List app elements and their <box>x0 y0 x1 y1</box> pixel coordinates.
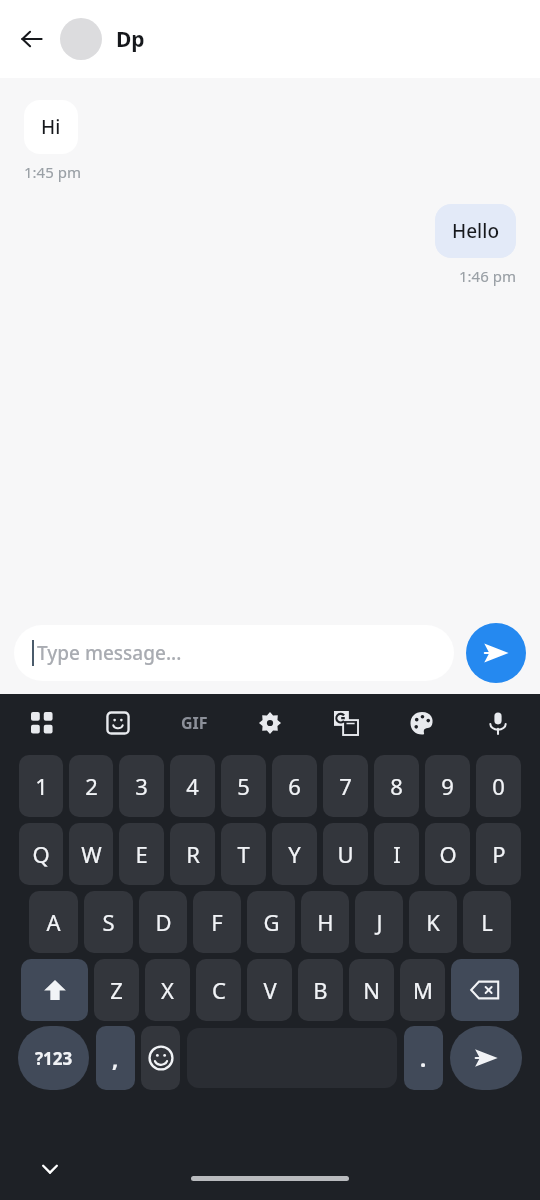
button[interactable]: Profile photo <box>60 18 102 60</box>
button[interactable]: Z <box>94 959 139 1021</box>
button[interactable]: , <box>96 1026 135 1090</box>
button[interactable]: L <box>463 891 511 953</box>
staticText: Z <box>110 975 123 1005</box>
button[interactable]: 4 <box>170 755 215 817</box>
staticText: Q <box>32 839 50 869</box>
button[interactable]: Q <box>19 823 63 885</box>
staticText: Type message... <box>37 640 182 666</box>
button[interactable]: Emoji <box>141 1026 180 1090</box>
staticText: I <box>393 839 401 869</box>
button[interactable]: GIF <box>172 701 216 745</box>
button[interactable]: Back <box>8 15 56 63</box>
staticText: . <box>420 1043 427 1073</box>
button[interactable]: N <box>349 959 394 1021</box>
button[interactable]: Type message... <box>14 625 454 681</box>
button[interactable]: 5 <box>221 755 266 817</box>
staticText: N <box>363 975 380 1005</box>
staticText: Hello <box>452 218 499 244</box>
button[interactable]: Themes <box>400 701 444 745</box>
staticText: Dp <box>116 25 145 54</box>
button[interactable]: Backspace <box>451 959 519 1021</box>
button[interactable]: 9 <box>425 755 470 817</box>
button[interactable]: 6 <box>272 755 317 817</box>
staticText: L <box>481 907 493 937</box>
staticText: 9 <box>441 771 454 801</box>
staticText: 5 <box>237 771 250 801</box>
button[interactable]: Send <box>466 623 526 683</box>
button[interactable]: 7 <box>323 755 368 817</box>
staticText: R <box>186 839 200 869</box>
button[interactable]: P <box>476 823 521 885</box>
button[interactable]: I <box>374 823 419 885</box>
staticText: 4 <box>186 771 199 801</box>
button[interactable]: 3 <box>119 755 164 817</box>
staticText: 0 <box>492 771 505 801</box>
button[interactable]: A <box>29 891 78 953</box>
button[interactable]: Settings <box>248 701 292 745</box>
staticText: 3 <box>135 771 148 801</box>
button[interactable]: Shift <box>21 959 88 1021</box>
button[interactable]: Stickers <box>96 701 140 745</box>
staticText: D <box>155 907 172 937</box>
button[interactable]: 2 <box>69 755 113 817</box>
button[interactable]: F <box>193 891 241 953</box>
button[interactable]: 8 <box>374 755 419 817</box>
button[interactable]: Apps <box>20 701 64 745</box>
staticText: 1:46 pm <box>459 266 516 286</box>
button[interactable]: . <box>404 1026 443 1090</box>
staticText: ?123 <box>35 1047 73 1070</box>
button[interactable]: Y <box>272 823 317 885</box>
staticText: O <box>439 839 457 869</box>
staticText: M <box>413 975 433 1005</box>
staticText: H <box>317 907 334 937</box>
staticText: T <box>237 839 250 869</box>
staticText: X <box>161 975 174 1005</box>
button[interactable]: M <box>400 959 445 1021</box>
button[interactable]: V <box>247 959 292 1021</box>
button[interactable]: Send <box>450 1026 522 1090</box>
button[interactable]: Hi <box>24 100 78 154</box>
button[interactable]: ?123 <box>18 1026 89 1090</box>
button[interactable]: S <box>84 891 133 953</box>
button[interactable]: Translate <box>324 701 368 745</box>
button[interactable]: Dp <box>116 25 145 54</box>
button[interactable]: 1 <box>19 755 63 817</box>
staticText: K <box>426 907 440 937</box>
button[interactable]: H <box>301 891 349 953</box>
staticText: G <box>263 907 280 937</box>
staticText: U <box>337 839 354 869</box>
button[interactable]: K <box>409 891 457 953</box>
button[interactable]: X <box>145 959 190 1021</box>
button[interactable]: G <box>247 891 295 953</box>
button[interactable]: Hide keyboard <box>30 1149 70 1189</box>
button[interactable]: 0 <box>476 755 521 817</box>
button[interactable]: O <box>425 823 470 885</box>
button[interactable]: W <box>69 823 113 885</box>
button[interactable]: B <box>298 959 343 1021</box>
button[interactable]: Hello <box>435 204 516 258</box>
staticText: W <box>81 839 102 869</box>
staticText: B <box>313 975 328 1005</box>
button[interactable]: J <box>355 891 403 953</box>
button[interactable]: R <box>170 823 215 885</box>
staticText: C <box>212 975 226 1005</box>
button[interactable]: C <box>196 959 241 1021</box>
staticText: A <box>46 907 61 937</box>
staticText: J <box>376 907 383 937</box>
staticText: P <box>492 839 506 869</box>
staticText: V <box>263 975 277 1005</box>
button[interactable]: T <box>221 823 266 885</box>
staticText: 1:45 pm <box>24 162 81 182</box>
staticText: 6 <box>288 771 301 801</box>
button[interactable]: U <box>323 823 368 885</box>
staticText: 1 <box>35 771 48 801</box>
staticText: GIF <box>181 712 208 734</box>
button[interactable]: Voice input <box>476 701 520 745</box>
staticText: Y <box>288 839 301 869</box>
staticText: 2 <box>85 771 98 801</box>
button[interactable]: D <box>139 891 187 953</box>
staticText: S <box>102 907 115 937</box>
button[interactable]: E <box>119 823 164 885</box>
staticText: Hi <box>41 114 61 140</box>
